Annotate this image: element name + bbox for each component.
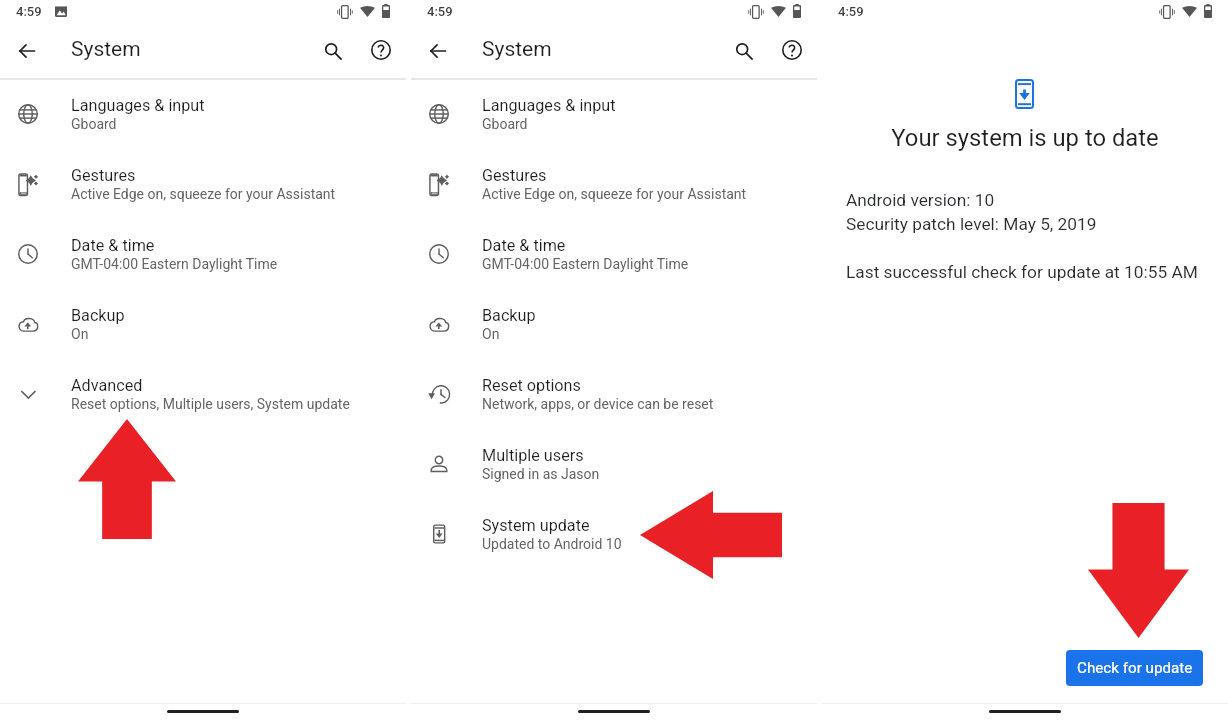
button[interactable]: Date & time — [0, 224, 406, 294]
button[interactable]: Reset options — [411, 364, 817, 434]
staticText: Gboard — [482, 116, 528, 132]
staticText: 4:59 — [16, 4, 42, 19]
staticText: Android version: 10 — [846, 190, 995, 210]
staticText: Signed in as Jason — [482, 466, 600, 482]
button[interactable]: Advanced — [0, 364, 406, 434]
staticText: Network, apps, or device can be reset — [482, 396, 714, 412]
button[interactable]: Gestures — [411, 154, 817, 224]
button[interactable]: Languages & input — [0, 84, 406, 154]
button[interactable]: Date & time — [411, 224, 817, 294]
staticText: Check for update — [1077, 659, 1193, 677]
staticText: 4:59 — [427, 4, 453, 19]
staticText: Active Edge on, squeeze for your Assista… — [482, 186, 747, 202]
staticText: On — [71, 326, 89, 342]
staticText: Your system is up to date — [822, 124, 1228, 152]
button[interactable]: Search — [316, 34, 350, 68]
staticText: System — [482, 37, 552, 62]
staticText: GMT-04:00 Eastern Daylight Time — [71, 256, 278, 272]
staticText: Reset options — [482, 376, 581, 395]
staticText: Backup — [71, 306, 125, 325]
button[interactable]: Gestures — [0, 154, 406, 224]
staticText: Languages & input — [482, 96, 616, 115]
staticText: Gestures — [71, 166, 136, 185]
staticText: Date & time — [71, 236, 155, 255]
staticText: Active Edge on, squeeze for your Assista… — [71, 186, 336, 202]
button[interactable]: Back — [8, 34, 42, 68]
button[interactable]: Help — [775, 34, 809, 68]
staticText: Gboard — [71, 116, 117, 132]
button[interactable]: Languages & input — [411, 84, 817, 154]
staticText: Gestures — [482, 166, 547, 185]
staticText: Date & time — [482, 236, 566, 255]
staticText: Security patch level: May 5, 2019 — [846, 214, 1097, 234]
staticText: Advanced — [71, 376, 143, 395]
staticText: 4:59 — [838, 4, 864, 19]
staticText: Backup — [482, 306, 536, 325]
button[interactable]: Check for update — [1066, 650, 1203, 686]
staticText: Multiple users — [482, 446, 584, 465]
button[interactable]: Multiple users — [411, 434, 817, 504]
staticText: On — [482, 326, 500, 342]
staticText: System — [71, 37, 141, 62]
button[interactable]: Backup — [0, 294, 406, 364]
button[interactable]: Backup — [411, 294, 817, 364]
staticText: Languages & input — [71, 96, 205, 115]
staticText: System update — [482, 516, 590, 535]
staticText: GMT-04:00 Eastern Daylight Time — [482, 256, 689, 272]
staticText: Reset options, Multiple users, System up… — [71, 396, 350, 412]
button[interactable]: System update — [411, 504, 817, 574]
button[interactable]: Help — [364, 34, 398, 68]
staticText: Updated to Android 10 — [482, 536, 622, 552]
button[interactable]: Back — [419, 34, 453, 68]
staticText: Last successful check for update at 10:5… — [846, 262, 1198, 282]
button[interactable]: Search — [727, 34, 761, 68]
